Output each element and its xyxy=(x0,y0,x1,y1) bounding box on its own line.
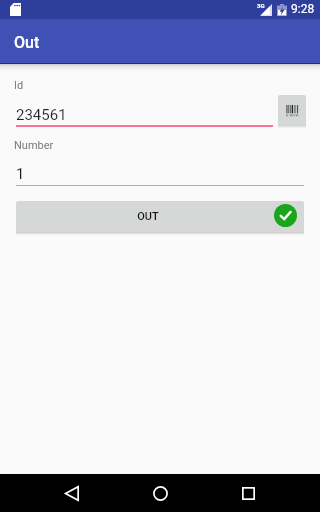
staticText: Out xyxy=(14,33,40,52)
button[interactable]: Scan barcode xyxy=(278,95,306,126)
staticText: 1 xyxy=(16,165,25,183)
staticText: 9:28 xyxy=(291,2,315,16)
staticText: OUT xyxy=(137,210,159,223)
button[interactable]: Home xyxy=(142,474,178,512)
staticText: Id xyxy=(14,79,24,92)
button[interactable]: Back xyxy=(54,474,90,512)
staticText: 3G xyxy=(257,2,265,9)
button[interactable]: OUT xyxy=(16,201,304,232)
button[interactable]: Recent apps xyxy=(230,474,266,512)
staticText: 234561 xyxy=(16,106,67,124)
staticText: Number xyxy=(14,139,54,152)
